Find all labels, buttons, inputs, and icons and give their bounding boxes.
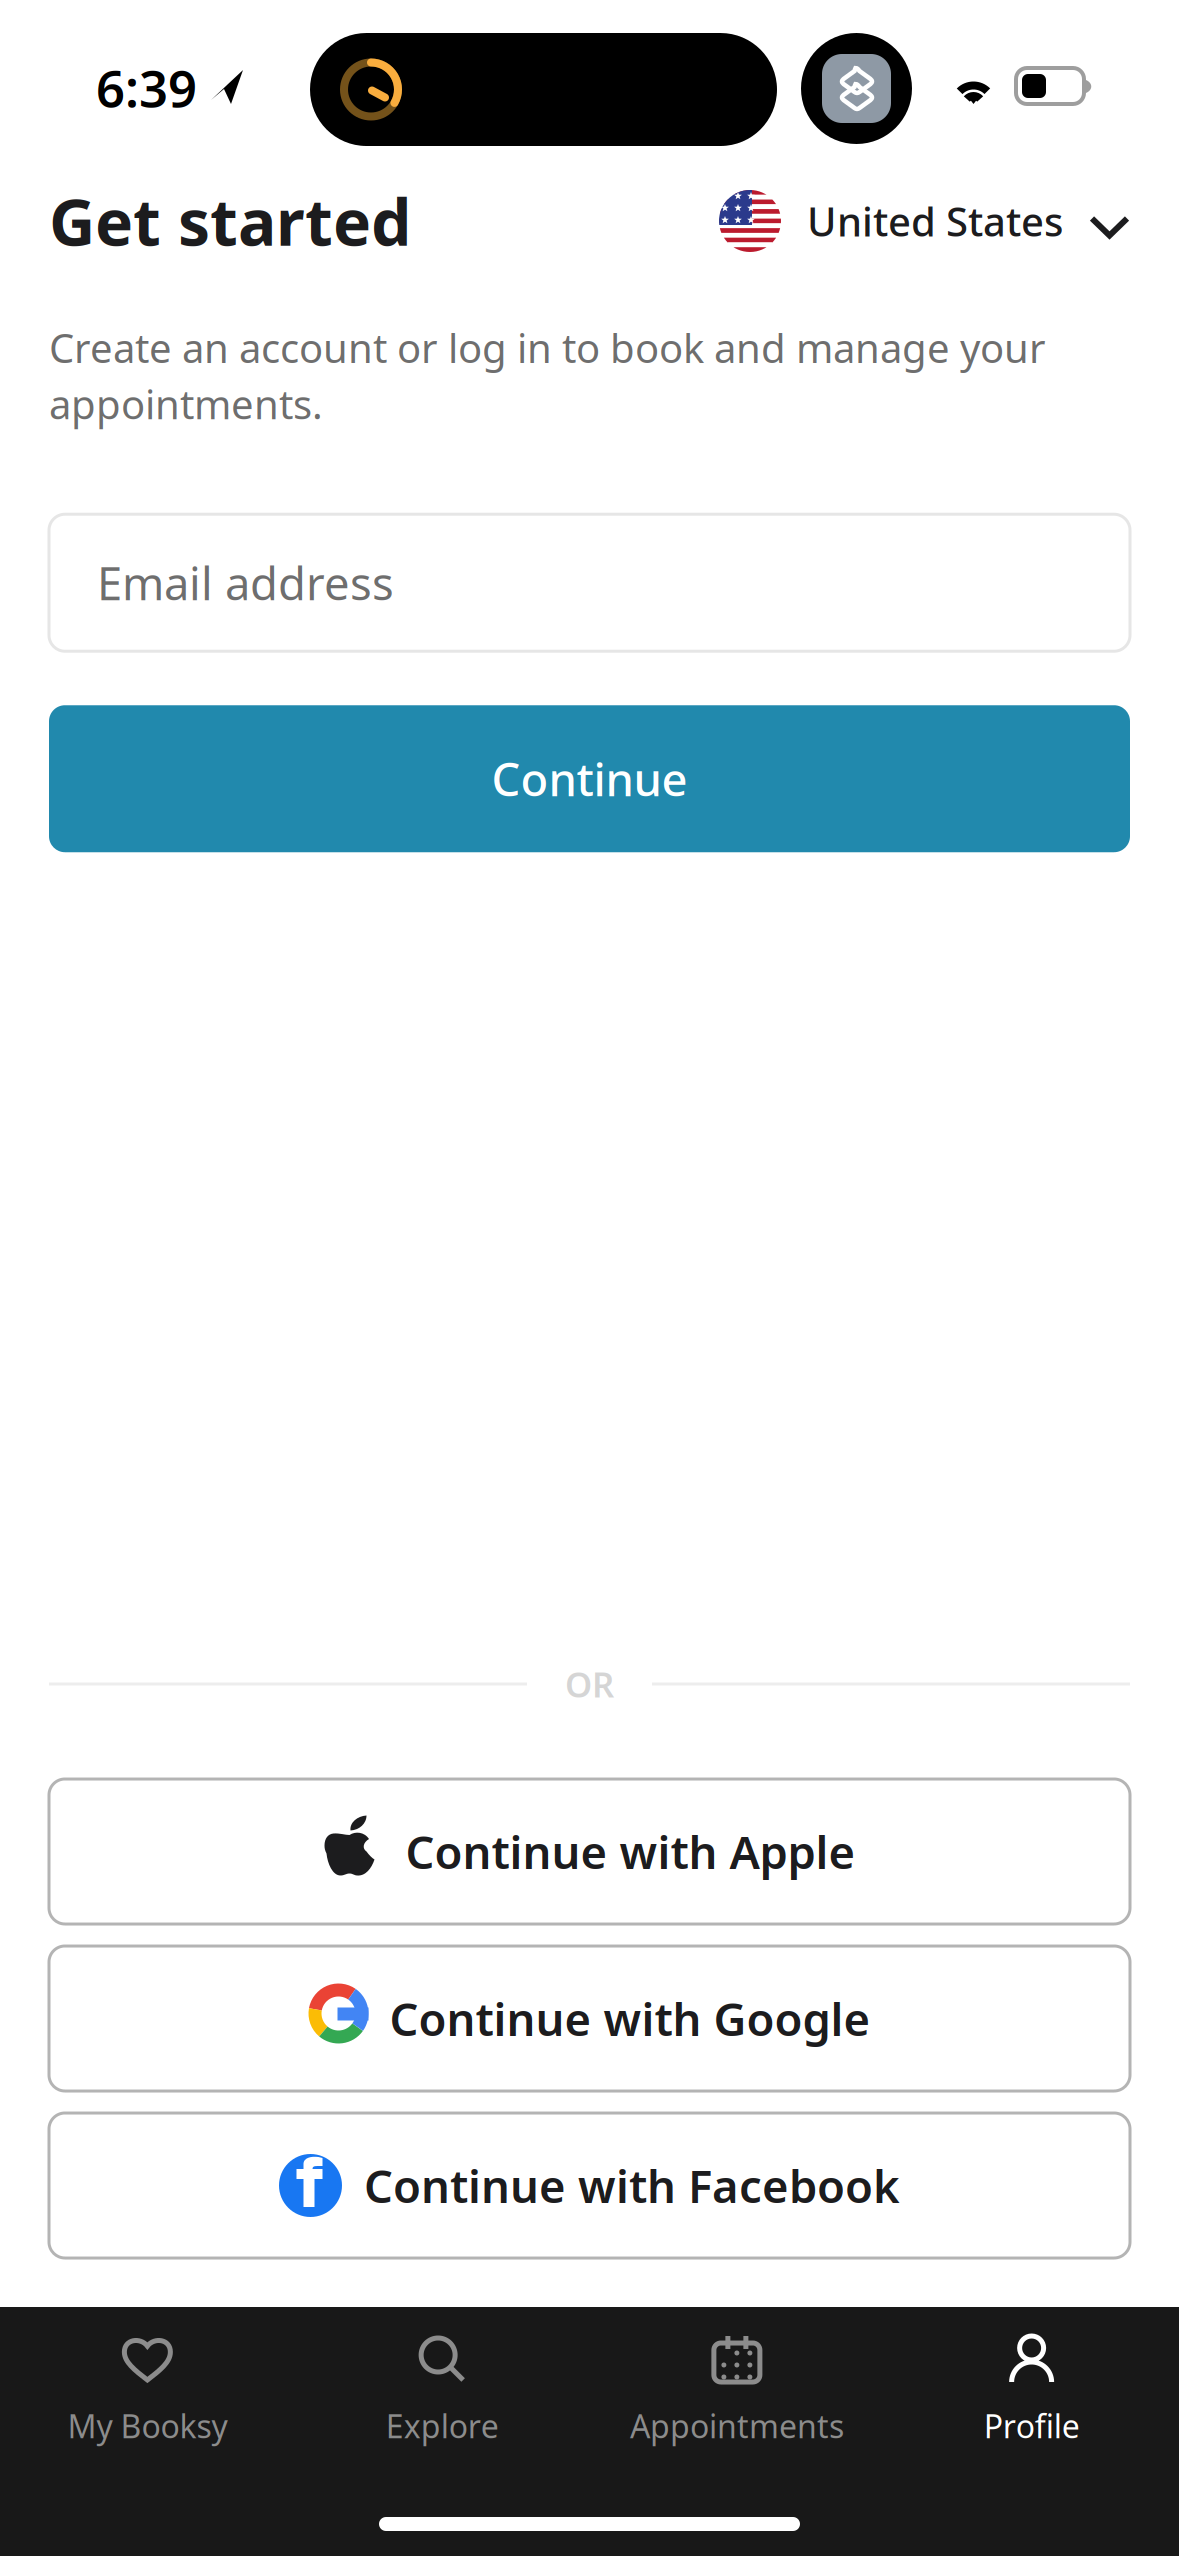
staticText: United States	[807, 194, 1063, 247]
button[interactable]: United States	[719, 190, 1130, 252]
staticText: 6:39	[96, 54, 197, 121]
staticText: OR	[565, 1661, 614, 1707]
staticText: My Booksy	[67, 2404, 227, 2447]
button[interactable]: Explore	[295, 2307, 590, 2447]
button[interactable]: Continue with Facebook	[49, 2113, 1130, 2258]
staticText: Continue with Apple	[405, 1821, 855, 1882]
button[interactable]: Email address	[49, 514, 1130, 651]
staticText: Appointments	[630, 2404, 844, 2447]
staticText: Continue	[491, 749, 687, 809]
button[interactable]: Continue	[49, 705, 1130, 852]
staticText: Continue with Facebook	[364, 2155, 900, 2216]
staticText: Explore	[386, 2404, 499, 2447]
button[interactable]: Continue with Apple	[49, 1779, 1130, 1924]
button[interactable]: My Booksy	[0, 2307, 295, 2447]
staticText: Continue with Google	[389, 1988, 870, 2049]
staticText: Create an account or log in to book and …	[49, 321, 1046, 430]
button[interactable]: Continue with Google	[49, 1946, 1130, 2091]
button[interactable]: Appointments	[589, 2307, 884, 2447]
staticText: Profile	[984, 2404, 1080, 2447]
staticText: Email address	[97, 553, 394, 613]
button[interactable]: Profile	[884, 2307, 1179, 2447]
staticText: Get started	[49, 178, 411, 263]
